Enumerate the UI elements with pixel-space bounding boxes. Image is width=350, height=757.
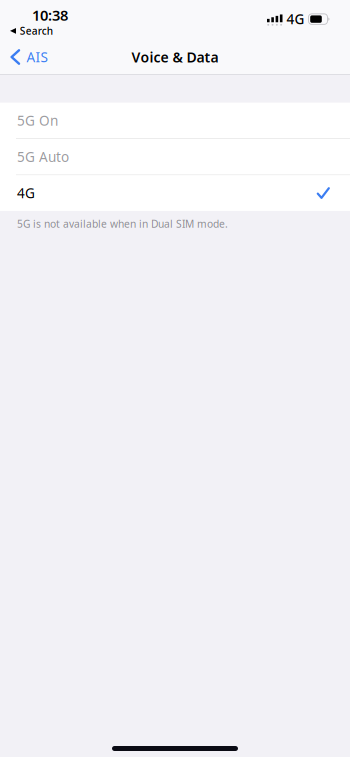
- staticText: 10:38: [32, 5, 68, 25]
- staticText: 4G: [286, 10, 304, 28]
- button[interactable]: AIS: [0, 40, 55, 74]
- button[interactable]: Search: [6, 21, 57, 41]
- staticText: 5G is not available when in Dual SIM mod…: [17, 217, 228, 231]
- staticText: 4G: [17, 184, 35, 202]
- staticText: 5G On: [17, 111, 58, 130]
- button[interactable]: 5G On: [0, 103, 350, 138]
- staticText: 5G Auto: [17, 147, 69, 166]
- staticText: Search: [20, 24, 53, 38]
- button[interactable]: 4G: [0, 175, 350, 211]
- staticText: AIS: [26, 48, 47, 66]
- button[interactable]: 5G Auto: [0, 139, 350, 174]
- staticText: Voice & Data: [131, 47, 218, 67]
